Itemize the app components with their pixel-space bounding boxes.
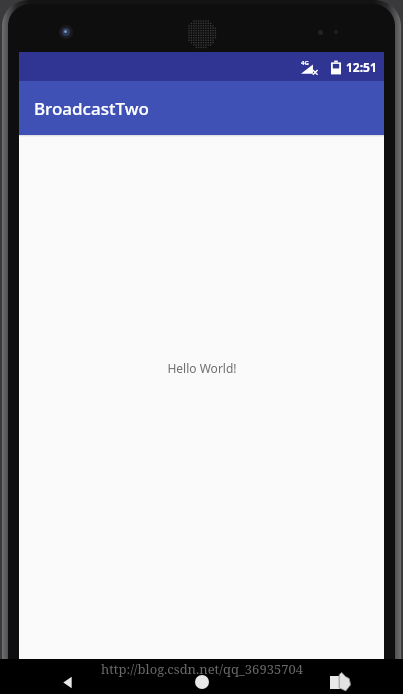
button[interactable]: Back — [0, 670, 135, 694]
staticText: 12:51 — [346, 59, 377, 75]
button[interactable]: BroadcastTwo — [19, 81, 384, 135]
staticText: BroadcastTwo — [34, 97, 149, 120]
button[interactable]: Recent apps — [269, 670, 403, 694]
staticText: Hello World! — [167, 360, 237, 376]
staticText: http://blog.csdn.net/qq_36935704 — [101, 660, 303, 678]
staticText: 4G — [301, 59, 309, 67]
button[interactable]: Home — [135, 670, 269, 694]
